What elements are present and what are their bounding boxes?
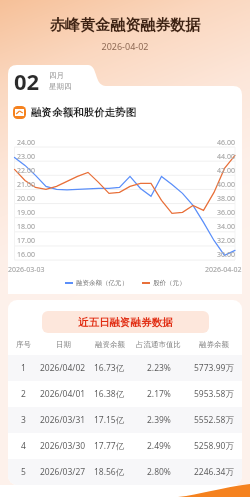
staticText: 22.00 bbox=[17, 166, 35, 176]
staticText: 5773.99万 bbox=[194, 362, 234, 374]
staticText: 2246.34万 bbox=[194, 466, 234, 478]
staticText: 2 bbox=[21, 388, 26, 400]
button[interactable]: 4 bbox=[8, 433, 242, 459]
staticText: 日期 bbox=[56, 340, 71, 349]
staticText: 32.00 bbox=[217, 236, 235, 246]
staticText: 3 bbox=[21, 414, 26, 426]
staticText: 融券余额 bbox=[199, 340, 229, 349]
staticText: 近五日融资融券数据 bbox=[78, 316, 173, 329]
staticText: 19.00 bbox=[17, 208, 35, 218]
staticText: 34.00 bbox=[217, 222, 235, 232]
staticText: 序号 bbox=[16, 340, 31, 349]
staticText: 5 bbox=[21, 466, 26, 478]
staticText: 38.00 bbox=[217, 194, 235, 204]
staticText: 1 bbox=[21, 362, 26, 374]
staticText: 17.15亿 bbox=[94, 414, 125, 426]
staticText: 2026-04-02 bbox=[205, 265, 242, 275]
staticText: 四月 bbox=[49, 71, 64, 80]
staticText: 21.00 bbox=[17, 180, 35, 190]
staticText: 18.56亿 bbox=[94, 466, 125, 478]
staticText: 2.80% bbox=[147, 466, 171, 478]
staticText: 2026-03-03 bbox=[8, 265, 45, 275]
staticText: 融资余额（亿元） bbox=[76, 279, 128, 287]
staticText: 2026/03/31 bbox=[40, 414, 86, 426]
staticText: 30.00 bbox=[217, 250, 235, 260]
staticText: 5258.90万 bbox=[194, 440, 234, 452]
staticText: 占流通市值比 bbox=[136, 340, 181, 349]
button[interactable]: 融资余额和股价走势图 bbox=[13, 106, 136, 119]
staticText: 融资余额和股价走势图 bbox=[31, 106, 136, 119]
staticText: 46.00 bbox=[217, 138, 235, 148]
staticText: 2026/03/27 bbox=[40, 466, 86, 478]
staticText: 2026/03/30 bbox=[40, 440, 86, 452]
staticText: 18.00 bbox=[17, 222, 35, 232]
staticText: 24.00 bbox=[17, 138, 35, 148]
staticText: 16.38亿 bbox=[94, 388, 125, 400]
staticText: 17.77亿 bbox=[94, 440, 125, 452]
staticText: 股价（元） bbox=[153, 279, 186, 287]
staticText: 2026/04/01 bbox=[40, 388, 86, 400]
staticText: 23.00 bbox=[17, 152, 35, 162]
staticText: 5953.58万 bbox=[194, 388, 234, 400]
staticText: 星期四 bbox=[49, 82, 72, 91]
staticText: 5552.58万 bbox=[194, 414, 234, 426]
staticText: 赤峰黄金融资融券数据 bbox=[0, 16, 250, 35]
staticText: 36.00 bbox=[217, 208, 235, 218]
staticText: 2026-04-02 bbox=[0, 40, 250, 52]
staticText: 44.00 bbox=[217, 152, 235, 162]
staticText: 2026/04/02 bbox=[40, 362, 86, 374]
button[interactable]: 5 bbox=[8, 459, 242, 485]
button[interactable]: 1 bbox=[8, 355, 242, 381]
staticText: 融资余额 bbox=[95, 340, 125, 349]
button[interactable]: 2 bbox=[8, 381, 242, 407]
staticText: 40.00 bbox=[217, 180, 235, 190]
staticText: 42.00 bbox=[217, 166, 235, 176]
staticText: 17.00 bbox=[17, 236, 35, 246]
staticText: 2.49% bbox=[147, 440, 171, 452]
staticText: 2.17% bbox=[147, 388, 171, 400]
button[interactable]: 3 bbox=[8, 407, 242, 433]
staticText: 20.00 bbox=[17, 194, 35, 204]
staticText: 4 bbox=[21, 440, 26, 452]
staticText: 16.73亿 bbox=[94, 362, 125, 374]
staticText: 2.39% bbox=[147, 414, 171, 426]
staticText: 02 bbox=[14, 66, 40, 96]
staticText: 2.23% bbox=[147, 362, 171, 374]
staticText: 16.00 bbox=[17, 250, 35, 260]
